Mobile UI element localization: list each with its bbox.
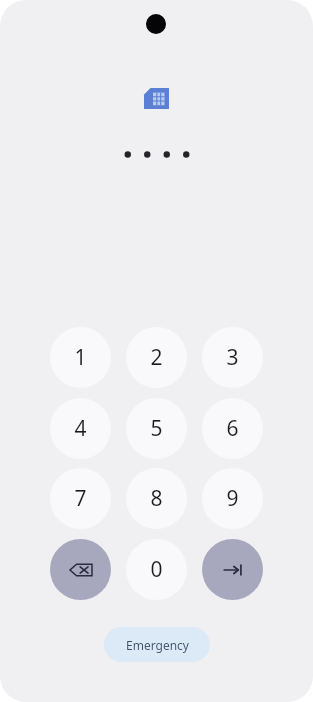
staticText: 6 xyxy=(226,414,239,443)
button[interactable]: 4 xyxy=(50,398,111,459)
staticText: 7 xyxy=(74,484,87,513)
button[interactable]: Enter xyxy=(202,539,263,600)
button[interactable]: 6 xyxy=(202,398,263,459)
staticText: 0 xyxy=(150,555,163,584)
button[interactable]: 8 xyxy=(126,468,187,529)
staticText: Emergency xyxy=(126,637,189,653)
button[interactable]: Delete xyxy=(50,539,111,600)
staticText: 8 xyxy=(150,484,163,513)
button[interactable]: 9 xyxy=(202,468,263,529)
button[interactable]: 7 xyxy=(50,468,111,529)
staticText: 3 xyxy=(226,343,239,372)
button[interactable]: 0 xyxy=(126,539,187,600)
staticText: 1 xyxy=(74,343,87,372)
button[interactable]: Emergency xyxy=(104,627,210,662)
button[interactable]: 5 xyxy=(126,398,187,459)
staticText: 5 xyxy=(150,414,163,443)
staticText: 4 xyxy=(74,414,87,443)
button[interactable]: 3 xyxy=(202,327,263,388)
staticText: 2 xyxy=(150,343,163,372)
button[interactable]: 1 xyxy=(50,327,111,388)
staticText: 9 xyxy=(226,484,239,513)
button[interactable]: 2 xyxy=(126,327,187,388)
